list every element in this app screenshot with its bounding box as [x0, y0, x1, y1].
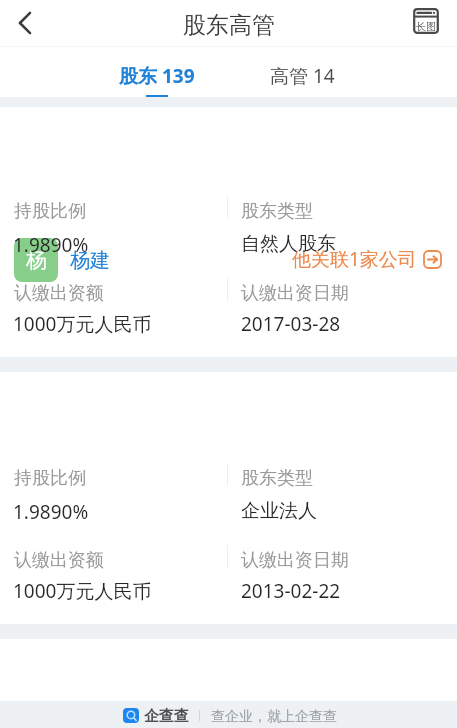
staticText: 高管 14 [270, 63, 335, 89]
button[interactable]: 股东 139 [96, 48, 217, 97]
staticText: 1000万元人民币 [13, 311, 152, 337]
staticText: 持股比例 [14, 200, 86, 223]
staticText: 股东高管 [183, 11, 275, 40]
button[interactable]: 股权结构 [0, 372, 457, 624]
staticText: 杨 [26, 247, 47, 273]
button[interactable]: 高管 14 [243, 48, 364, 97]
staticText: 持股比例 [14, 467, 86, 490]
button[interactable]: 长图 [404, 0, 448, 43]
staticText: 2017-03-28 [241, 311, 341, 337]
staticText: 他关联1家公司 [292, 246, 417, 272]
staticText: 认缴出资日期 [241, 282, 349, 305]
staticText: 自然人股东 [241, 232, 336, 256]
button[interactable]: 杨建 [70, 248, 110, 273]
staticText: 股东 139 [119, 63, 195, 89]
staticText: 认缴出资额 [14, 282, 104, 305]
staticText: 1.9890% [13, 499, 89, 525]
staticText: 1000万元人民币 [13, 578, 152, 604]
button[interactable]: 杨 [0, 107, 457, 357]
staticText: 认缴出资额 [14, 549, 104, 572]
button[interactable]: Back [2, 0, 48, 46]
staticText: 股东类型 [241, 467, 313, 490]
staticText: 企查查 [144, 707, 189, 726]
button[interactable]: 他关联1家公司 [292, 246, 442, 272]
button[interactable]: 企查查 [123, 708, 139, 723]
staticText: 1.9890% [13, 232, 89, 258]
staticText: 长图 [416, 20, 436, 33]
staticText: 2013-02-22 [241, 578, 341, 604]
staticText: 认缴出资日期 [241, 549, 349, 572]
button[interactable]: 杨 [14, 238, 58, 282]
staticText: 企业法人 [241, 499, 317, 523]
staticText: 查企业，就上企查查 [211, 708, 337, 726]
staticText: 股东类型 [241, 200, 313, 223]
